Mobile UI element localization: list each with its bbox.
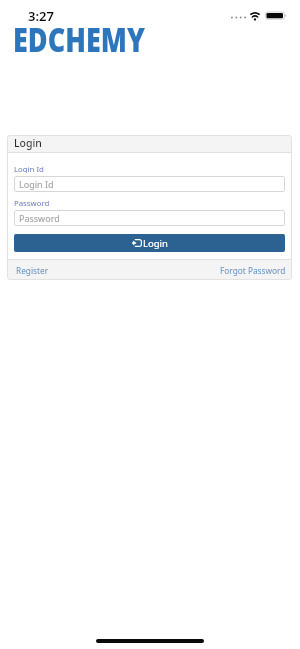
staticText: EDCHEMY bbox=[13, 16, 145, 62]
button[interactable]: Forgot Password bbox=[220, 265, 292, 276]
button[interactable]: Register bbox=[7, 265, 49, 276]
staticText: Password bbox=[19, 212, 60, 224]
staticText: Password bbox=[14, 198, 50, 207]
button[interactable]: Login Id bbox=[14, 176, 285, 192]
button[interactable]: Password bbox=[14, 210, 285, 226]
staticText: Login Id bbox=[14, 164, 44, 173]
button[interactable]: Login bbox=[14, 234, 285, 252]
staticText: Login bbox=[143, 237, 168, 250]
staticText: Login Id bbox=[19, 178, 54, 190]
staticText: Login bbox=[14, 136, 42, 150]
staticText: 3:27 bbox=[28, 7, 54, 25]
